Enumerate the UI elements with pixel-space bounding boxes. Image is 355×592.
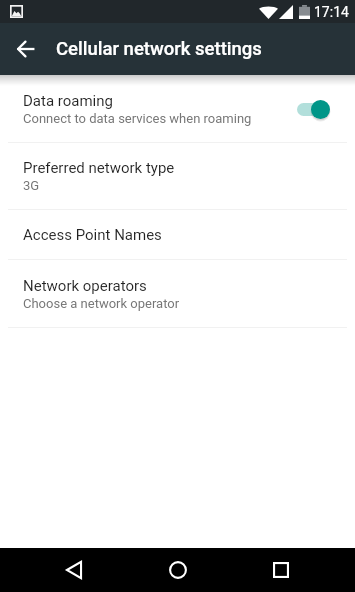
button[interactable]: Home (148, 548, 208, 592)
button[interactable]: Navigate up (0, 23, 52, 75)
button[interactable]: Network operators (0, 260, 355, 327)
staticText: 3G (23, 178, 40, 193)
staticText: Network operators (23, 277, 147, 295)
staticText: Data roaming (23, 92, 113, 110)
staticText: Cellular network settings (56, 38, 262, 60)
button[interactable]: Data roaming (0, 75, 355, 142)
staticText: Preferred network type (23, 159, 175, 177)
staticText: 17:14 (314, 4, 349, 20)
button[interactable]: Access Point Names (0, 210, 355, 259)
button[interactable]: Recent apps (251, 548, 311, 592)
staticText: Choose a network operator (23, 296, 180, 311)
button[interactable]: Preferred network type (0, 143, 355, 209)
staticText: Access Point Names (23, 226, 162, 244)
staticText: Connect to data services when roaming (23, 111, 252, 126)
button[interactable]: Back (44, 548, 104, 592)
